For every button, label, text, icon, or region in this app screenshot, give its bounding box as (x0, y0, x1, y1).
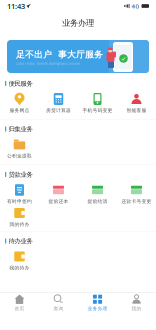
staticText: 便民服务 (8, 79, 32, 88)
staticText: 提前还本 (48, 198, 68, 204)
staticText: 待办业务 (8, 237, 32, 245)
button[interactable]: 我的待办 (0, 206, 39, 228)
staticText: 房贷计算器 (46, 107, 71, 113)
button[interactable]: 房贷计算器 (39, 92, 78, 114)
staticText: 我的 (131, 306, 141, 312)
button[interactable]: 足不出户 事大厅服务 (7, 40, 149, 73)
button[interactable]: 还款卡号变更 (117, 183, 156, 205)
staticText: 业务办理 (62, 18, 94, 28)
button[interactable]: 首页 (0, 293, 39, 313)
staticText: 提前结清 (87, 198, 107, 204)
button[interactable]: 智能客服 (117, 92, 156, 114)
button[interactable]: 查询 (39, 293, 78, 313)
button[interactable]: 有时申签约 (0, 183, 39, 205)
staticText: 手机号码变更 (82, 107, 112, 113)
button[interactable]: 业务办理 (78, 293, 117, 313)
staticText: 有时申签约 (7, 198, 32, 204)
button[interactable]: 服务网点 (0, 92, 39, 114)
staticText: 11:43 (7, 1, 25, 11)
staticText: 40 (131, 2, 139, 10)
staticText: 服务网点 (9, 107, 29, 113)
button[interactable]: 提前还本 (39, 183, 78, 205)
staticText: 贷款业务 (8, 170, 32, 179)
button[interactable]: 我的待办 (0, 249, 39, 271)
staticText: 还款卡号变更 (121, 198, 151, 204)
staticText: 智能客服 (126, 107, 146, 113)
staticText: 足不出户 事大厅服务 (16, 49, 103, 60)
staticText: 首页 (14, 306, 24, 312)
staticText: 查询 (53, 306, 63, 312)
staticText: 我的待办 (9, 265, 29, 271)
staticText: 我的待办 (9, 221, 29, 227)
staticText: zubu chuhu banshi datingfuwu zaixian (16, 61, 80, 66)
staticText: 公积金提取 (7, 153, 32, 159)
staticText: 归集业务 (8, 125, 32, 133)
button[interactable]: 公积金提取 (0, 137, 39, 159)
button[interactable]: 提前结清 (78, 183, 117, 205)
button[interactable]: 我的 (117, 293, 156, 313)
button[interactable]: 手机号码变更 (78, 92, 117, 114)
staticText: 业务办理 (87, 306, 107, 312)
